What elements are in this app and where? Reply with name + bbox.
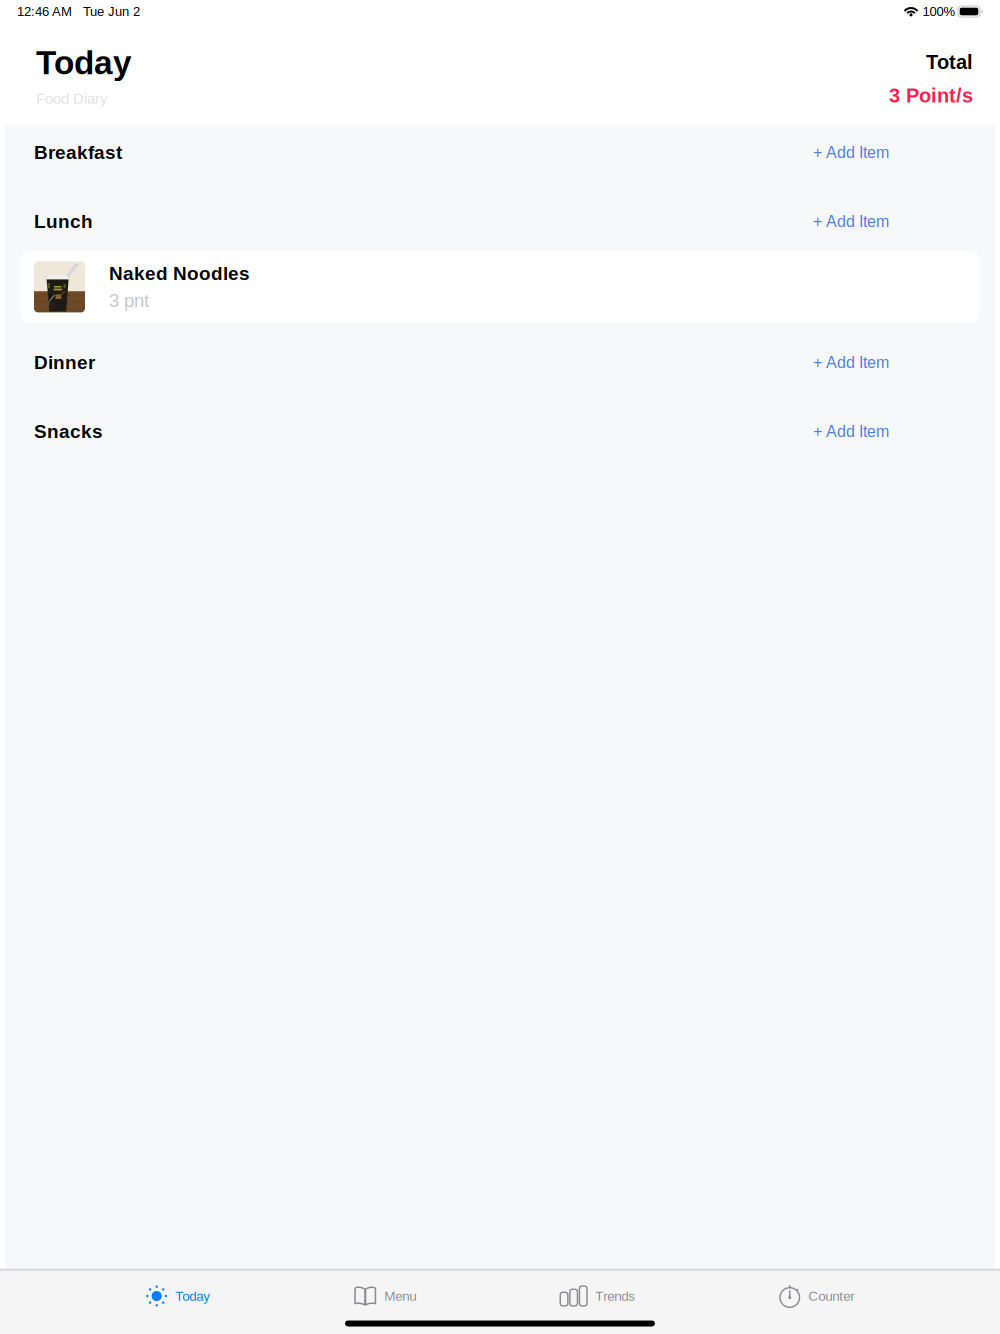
staticText: Counter: [808, 1288, 854, 1303]
staticText: Total: [926, 51, 973, 73]
button[interactable]: Counter: [779, 1283, 854, 1309]
button[interactable]: + Add Item: [805, 343, 897, 381]
staticText: Naked Noodles: [109, 263, 250, 284]
button[interactable]: + Add Item: [805, 133, 897, 171]
staticText: Snacks: [34, 421, 103, 442]
staticText: Today: [36, 44, 132, 81]
staticText: Food Diary: [36, 90, 107, 107]
staticText: Today: [175, 1288, 210, 1303]
staticText: + Add Item: [813, 353, 889, 371]
button[interactable]: + Add Item: [805, 202, 897, 240]
staticText: 3 pnt: [109, 290, 149, 311]
staticText: 100%: [922, 4, 955, 19]
staticText: 3 Point/s: [889, 84, 973, 107]
staticText: Menu: [384, 1288, 416, 1303]
staticText: + Add Item: [813, 143, 889, 161]
staticText: + Add Item: [813, 212, 889, 230]
staticText: Lunch: [34, 211, 93, 232]
button[interactable]: Menu: [354, 1283, 416, 1309]
button[interactable]: + Add Item: [805, 412, 897, 450]
button[interactable]: Naked Noodles: [20, 251, 980, 323]
staticText: 12:46 AM: [17, 4, 72, 19]
staticText: Tue Jun 2: [83, 4, 140, 19]
staticText: Trends: [595, 1288, 635, 1303]
staticText: Dinner: [34, 352, 95, 373]
staticText: Breakfast: [34, 142, 122, 163]
staticText: + Add Item: [813, 422, 889, 440]
button[interactable]: Trends: [560, 1283, 635, 1309]
button[interactable]: Today: [146, 1283, 210, 1309]
